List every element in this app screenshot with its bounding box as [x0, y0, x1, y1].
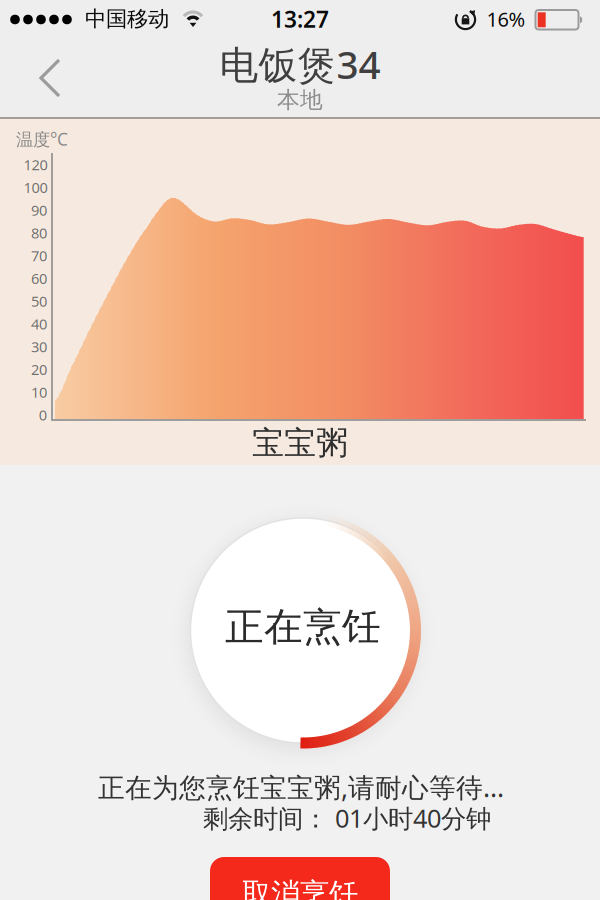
- staticText: 120: [23, 155, 47, 174]
- staticText: 20: [31, 359, 47, 379]
- staticText: 90: [31, 200, 47, 220]
- staticText: 正在为您烹饪宝宝粥,请耐心等待...: [98, 769, 504, 805]
- staticText: 70: [31, 246, 47, 265]
- staticText: 10: [31, 382, 47, 402]
- staticText: 取消烹饪: [242, 876, 358, 900]
- staticText: 0: [39, 405, 47, 424]
- staticText: 16%: [486, 6, 525, 32]
- staticText: 40: [31, 314, 47, 333]
- staticText: 温度°C: [16, 127, 68, 150]
- staticText: 剩余时间： 01小时40分钟: [203, 801, 491, 835]
- staticText: 本地: [277, 86, 323, 114]
- staticText: 正在烹饪: [225, 603, 381, 651]
- staticText: 13:27: [271, 4, 329, 34]
- staticText: 电饭煲34: [219, 38, 380, 90]
- staticText: 60: [31, 268, 47, 288]
- staticText: 宝宝粥: [252, 423, 348, 463]
- staticText: 50: [31, 291, 47, 311]
- staticText: 30: [31, 337, 47, 356]
- staticText: 80: [31, 223, 47, 242]
- button[interactable]: 取消烹饪: [210, 857, 390, 900]
- button[interactable]: Back: [29, 54, 73, 102]
- staticText: 100: [23, 177, 47, 197]
- staticText: 中国移动: [85, 6, 169, 32]
